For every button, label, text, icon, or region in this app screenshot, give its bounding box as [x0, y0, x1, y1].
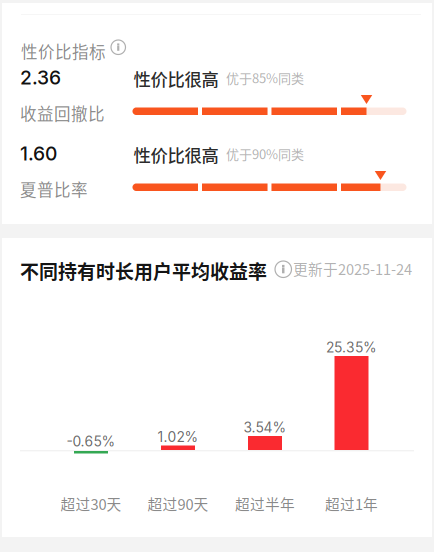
button[interactable]: 说明	[274, 260, 292, 278]
staticText: 收益回撤比	[20, 101, 105, 125]
staticText: 优于85%同类	[226, 68, 304, 87]
staticText: 超过90天	[147, 493, 208, 514]
staticText: 25.35%	[326, 339, 377, 356]
staticText: 3.54%	[243, 419, 286, 436]
staticText: 超过1年	[325, 493, 378, 514]
staticText: 超过30天	[60, 493, 121, 514]
staticText: 不同持有时长用户平均收益率	[20, 257, 267, 284]
staticText: 优于90%同类	[226, 144, 304, 163]
staticText: 性价比很高	[133, 66, 218, 91]
staticText: 1.60	[20, 142, 57, 165]
staticText: 超过半年	[235, 493, 295, 514]
staticText: 2.36	[20, 66, 61, 89]
staticText: -0.65%	[66, 433, 115, 450]
button[interactable]: 性价比指标	[21, 39, 133, 57]
staticText: 1.02%	[157, 428, 198, 445]
staticText: 夏普比率	[20, 177, 88, 201]
staticText: 更新于2025-11-24	[293, 258, 412, 279]
staticText: 性价比很高	[133, 142, 218, 167]
staticText: 性价比指标	[21, 39, 106, 63]
